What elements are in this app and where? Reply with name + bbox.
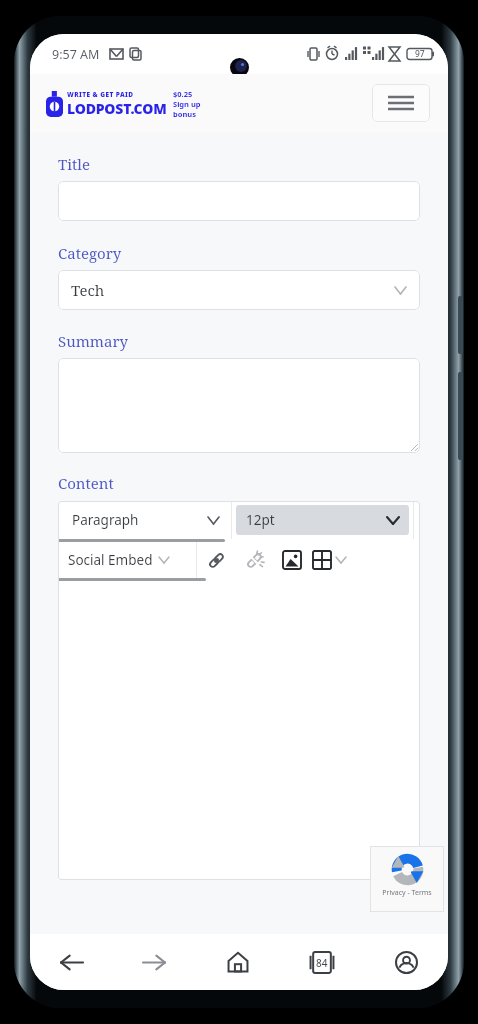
staticText: Title <box>58 154 90 174</box>
button[interactable]: Title input <box>58 181 420 221</box>
button[interactable]: Back <box>30 934 113 990</box>
staticText: WRITE & GET PAID <box>67 90 134 99</box>
staticText: bonus <box>173 109 196 119</box>
button[interactable]: Lodpost home <box>46 88 201 119</box>
staticText: 9:57 AM <box>52 46 100 63</box>
staticText: Category <box>58 243 122 263</box>
staticText: Tech <box>71 280 105 300</box>
button[interactable]: Insert image <box>273 542 311 578</box>
button[interactable]: Paragraph <box>62 501 227 539</box>
button[interactable]: Summary input <box>58 358 420 453</box>
staticText: 97 <box>415 48 425 60</box>
staticText: Paragraph <box>72 511 139 529</box>
button[interactable]: Tabs, 84 open <box>280 934 364 990</box>
button[interactable]: Forward <box>113 934 196 990</box>
staticText: Social Embed <box>68 551 153 569</box>
staticText: $0.25 <box>173 89 193 99</box>
button[interactable]: Social Embed <box>68 542 196 578</box>
button[interactable]: Home <box>196 934 280 990</box>
button[interactable]: Insert link <box>197 542 235 578</box>
staticText: Privacy - Terms <box>382 888 432 898</box>
button[interactable]: 12pt <box>236 505 409 535</box>
staticText: Summary <box>58 331 129 351</box>
button[interactable]: Open menu <box>372 84 430 122</box>
button[interactable]: Insert table <box>313 542 346 578</box>
staticText: Content <box>58 473 114 493</box>
staticText: 12pt <box>246 511 275 529</box>
button[interactable]: Tech <box>58 270 420 310</box>
button[interactable]: Profile <box>364 934 448 990</box>
button[interactable]: Remove link <box>235 542 273 578</box>
staticText: 84 <box>316 956 328 970</box>
staticText: Sign up <box>173 99 201 109</box>
button[interactable]: reCAPTCHA privacy and terms <box>370 846 444 912</box>
button[interactable]: Content editor <box>58 582 420 880</box>
staticText: LODPOST.COM <box>67 99 167 118</box>
